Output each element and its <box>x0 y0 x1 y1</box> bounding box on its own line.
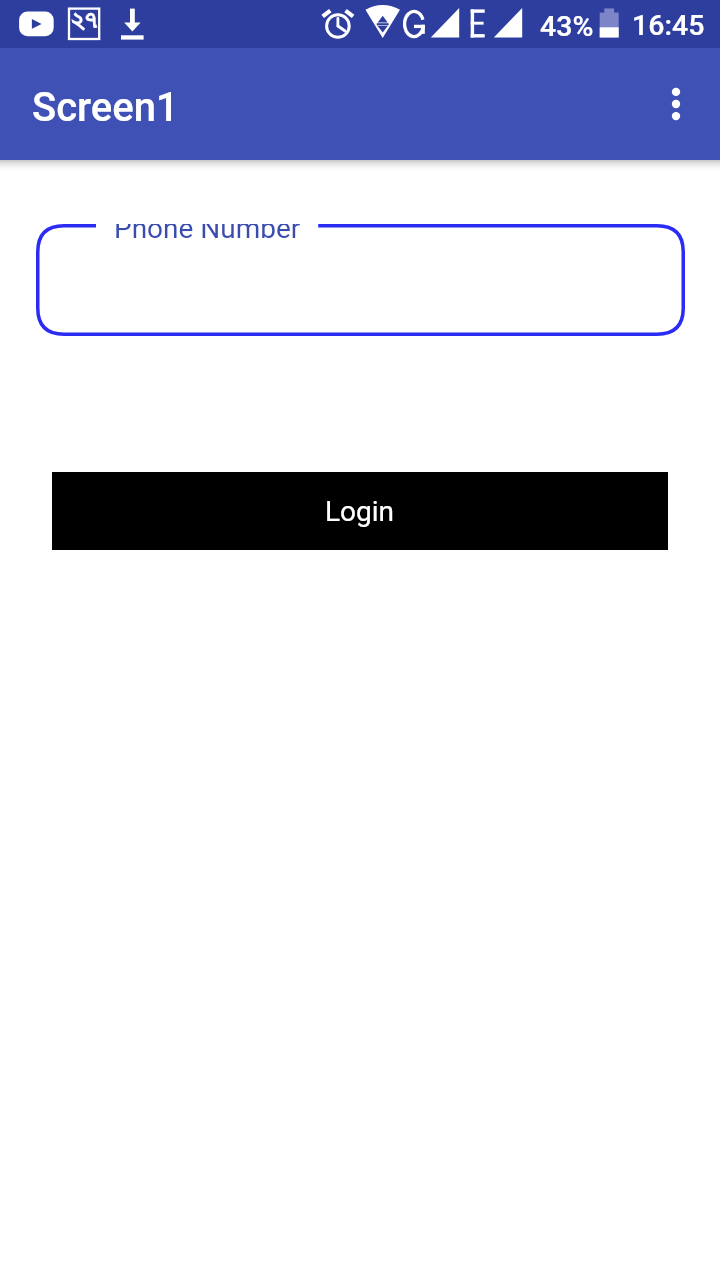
staticText: 16:45 <box>632 9 705 42</box>
staticText: Screen1 <box>32 84 179 131</box>
staticText: Phone Number <box>114 224 301 245</box>
staticText: Login <box>325 495 395 528</box>
button[interactable]: Phone Number input <box>36 224 685 336</box>
staticText: 43% <box>540 10 594 43</box>
button[interactable]: More options <box>648 76 704 132</box>
staticText: ২৭ <box>71 7 97 34</box>
button[interactable]: Login <box>52 472 668 550</box>
